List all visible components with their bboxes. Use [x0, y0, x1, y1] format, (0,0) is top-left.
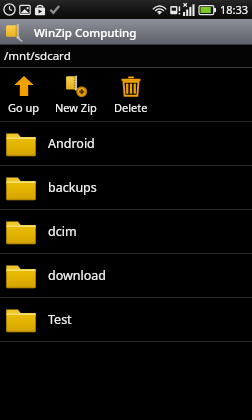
staticText: Android: [48, 135, 95, 152]
staticText: WinZip Computing: [34, 25, 137, 41]
button[interactable]: Delete: [104, 68, 158, 121]
staticText: 18:33: [220, 2, 249, 17]
staticText: Delete: [114, 100, 148, 115]
button[interactable]: Test: [0, 298, 252, 341]
button[interactable]: download: [0, 254, 252, 297]
staticText: /mnt/sdcard: [4, 48, 71, 64]
staticText: Test: [48, 311, 72, 328]
button[interactable]: New Zip: [47, 68, 104, 121]
staticText: New Zip: [55, 100, 97, 115]
staticText: backups: [48, 179, 97, 196]
staticText: download: [48, 267, 107, 284]
button[interactable]: Go up: [0, 68, 47, 121]
staticText: Go up: [8, 100, 40, 115]
staticText: dcim: [48, 223, 77, 240]
button[interactable]: backups: [0, 166, 252, 209]
button[interactable]: Android: [0, 122, 252, 165]
button[interactable]: dcim: [0, 210, 252, 253]
